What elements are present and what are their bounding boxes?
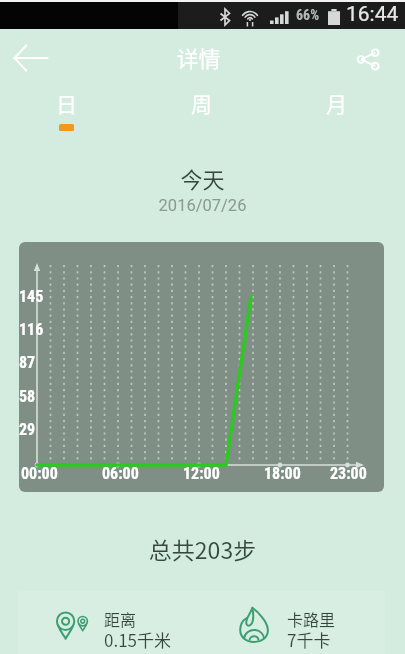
staticText: 今天 [0,162,405,194]
staticText: 详情 [0,41,401,73]
button[interactable]: 周 [135,86,270,136]
staticText: 18:00 [264,464,301,483]
staticText: 29 [19,420,36,439]
staticText: 12:00 [183,464,220,483]
staticText: 月 [269,88,404,118]
staticText: 总共203步 [0,532,405,565]
staticText: 58 [19,387,36,406]
staticText: 周 [134,88,269,118]
staticText: 距离 [104,607,137,630]
staticText: 16:44 [346,2,399,27]
staticText: 23:00 [330,464,367,483]
button[interactable]: Back [8,35,54,81]
staticText: 87 [19,353,36,372]
staticText: 0.15千米 [104,627,172,652]
staticText: 66% [296,7,320,23]
button[interactable]: 距离 [18,591,201,654]
staticText: 116 [19,320,44,339]
staticText: 日 [0,88,134,118]
staticText: 06:00 [102,464,139,483]
button[interactable]: 日 [0,86,135,136]
button[interactable]: 月 [270,86,405,136]
staticText: 7千卡 [287,627,331,652]
staticText: 145 [19,287,44,306]
staticText: 2016/07/26 [0,196,405,215]
button[interactable]: Share [349,40,387,78]
staticText: 00:00 [21,464,58,483]
staticText: 卡路里 [287,607,336,630]
button[interactable]: 卡路里 [201,591,385,654]
